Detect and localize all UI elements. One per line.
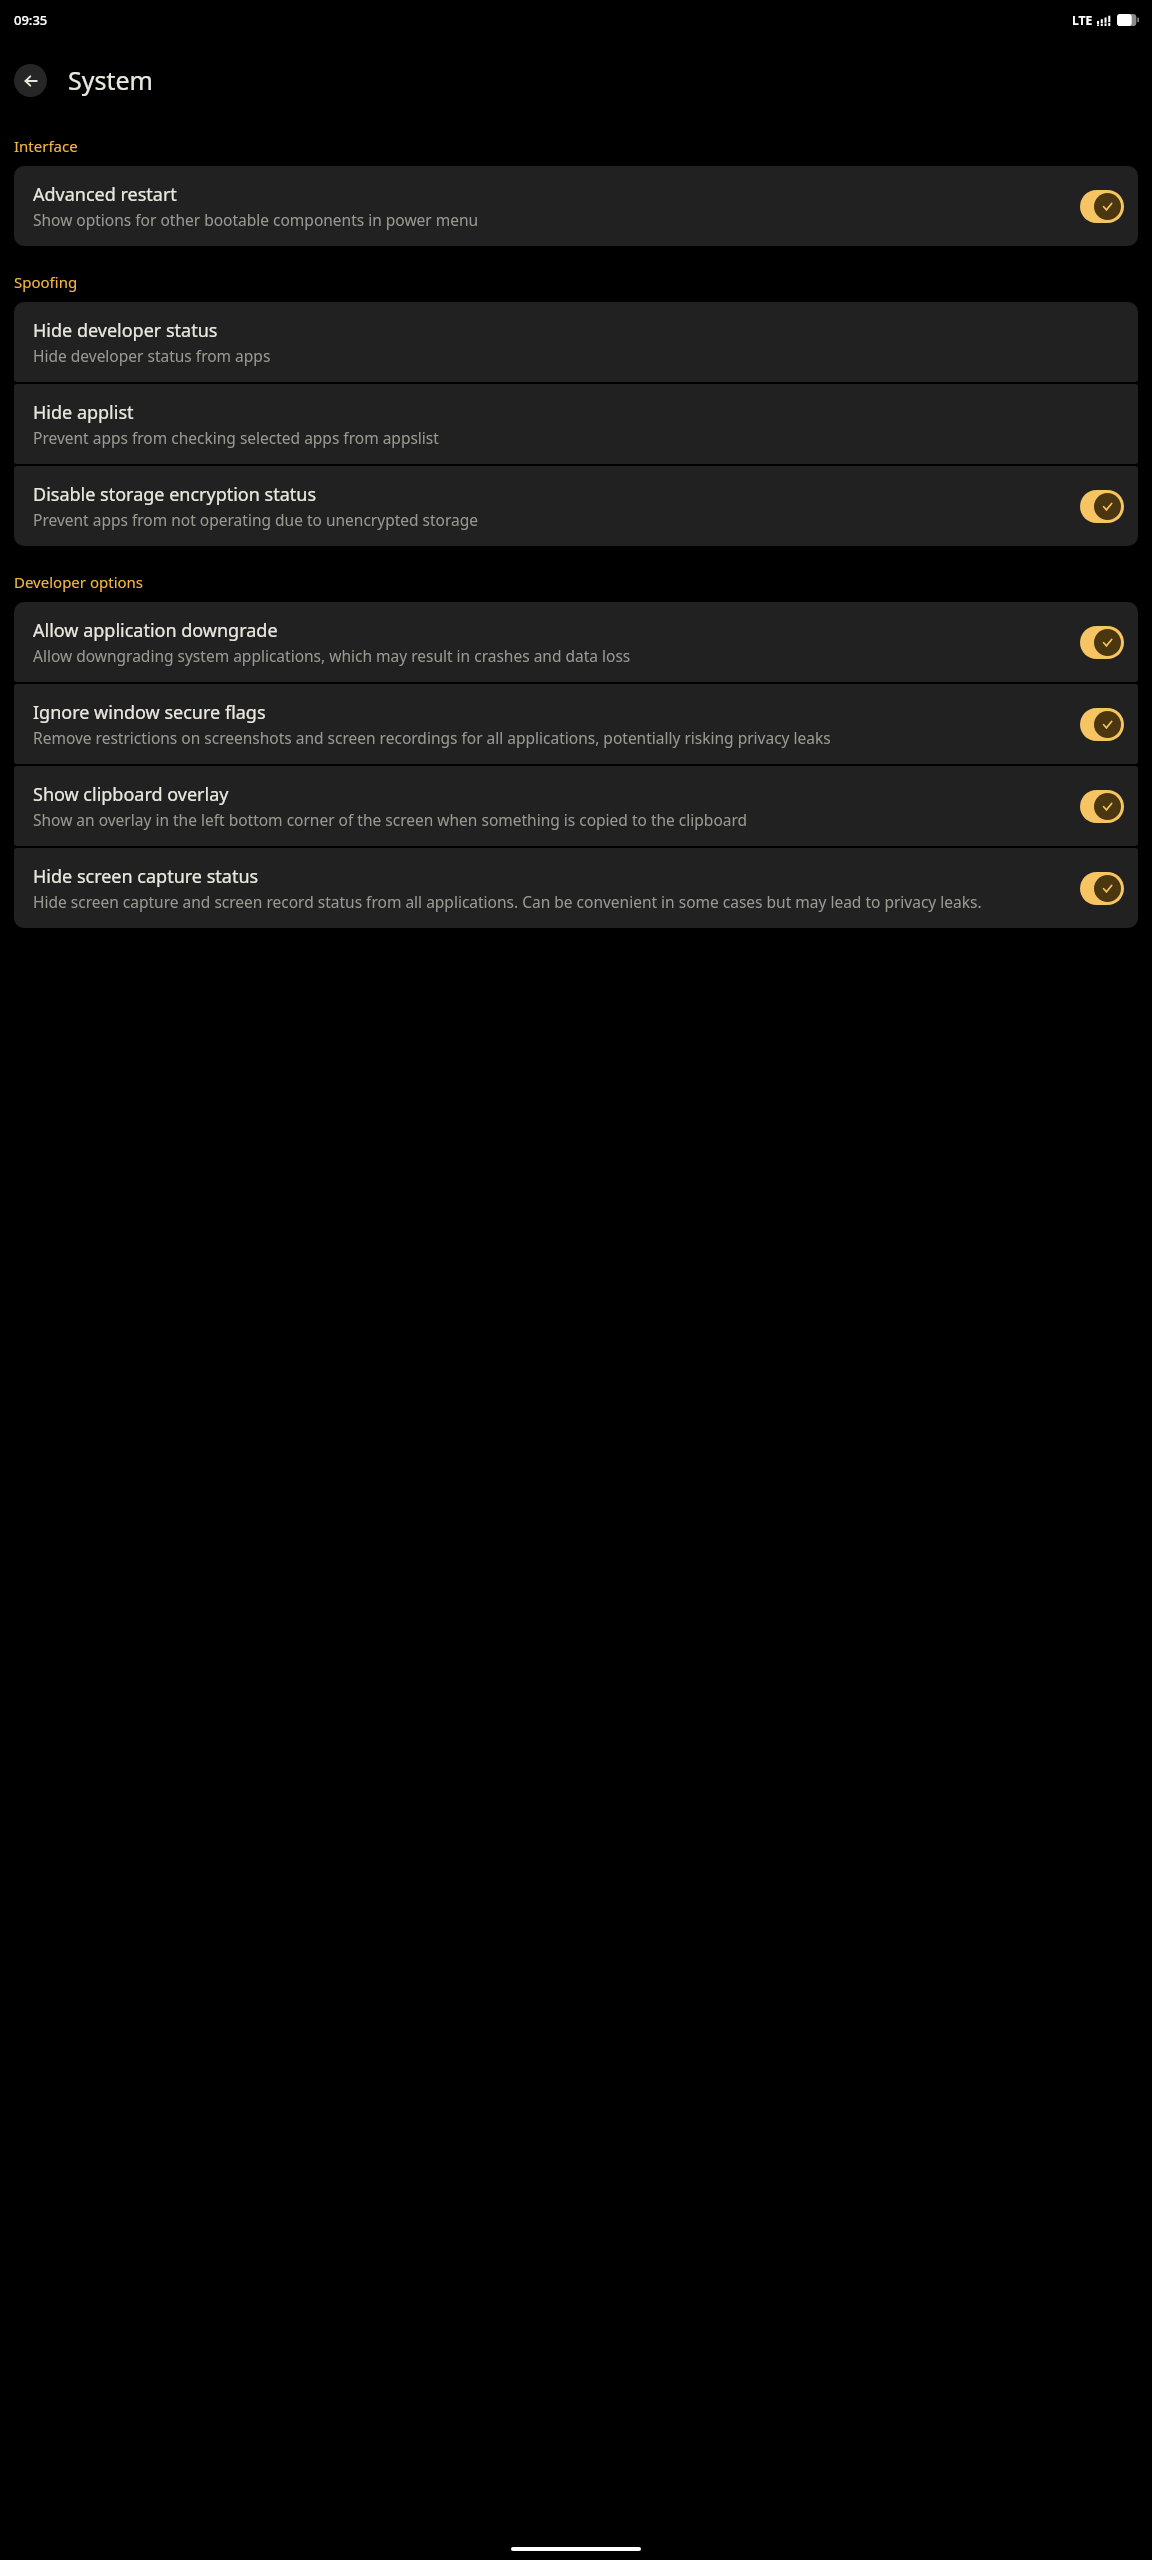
staticText: Show options for other bootable componen…	[33, 209, 479, 230]
staticText: LTE	[1072, 12, 1093, 28]
staticText: Prevent apps from not operating due to u…	[33, 509, 479, 530]
staticText: Advanced restart	[33, 182, 177, 207]
button[interactable]: Advanced restart	[14, 166, 1138, 246]
button[interactable]: Toggle on	[1080, 708, 1124, 741]
staticText: 09:35	[14, 11, 48, 29]
staticText: Prevent apps from checking selected apps…	[33, 427, 439, 448]
staticText: Interface	[14, 136, 78, 156]
staticText: Allow downgrading system applications, w…	[33, 645, 631, 666]
button[interactable]: Hide applist	[14, 384, 1138, 464]
button[interactable]: Allow application downgrade	[14, 602, 1138, 682]
staticText: Developer options	[14, 572, 144, 592]
button[interactable]: Hide screen capture status	[14, 848, 1138, 928]
staticText: Hide applist	[33, 400, 134, 425]
button[interactable]: Toggle on	[1080, 190, 1124, 223]
button[interactable]: Toggle on	[1080, 872, 1124, 905]
staticText: System	[68, 63, 153, 97]
staticText: Disable storage encryption status	[33, 482, 317, 507]
button[interactable]: Ignore window secure flags	[14, 684, 1138, 764]
staticText: Hide developer status from apps	[33, 345, 271, 366]
staticText: Show an overlay in the left bottom corne…	[33, 809, 748, 830]
button[interactable]: Show clipboard overlay	[14, 766, 1138, 846]
staticText: Allow application downgrade	[33, 618, 278, 643]
staticText: Ignore window secure flags	[33, 700, 266, 725]
staticText: Hide developer status	[33, 318, 218, 343]
button[interactable]: Back	[14, 64, 47, 97]
staticText: Remove restrictions on screenshots and s…	[33, 727, 831, 748]
button[interactable]: Toggle on	[1080, 790, 1124, 823]
staticText: Spoofing	[14, 272, 78, 292]
staticText: Hide screen capture status	[33, 864, 259, 889]
button[interactable]: Disable storage encryption status	[14, 466, 1138, 546]
button[interactable]: Toggle on	[1080, 490, 1124, 523]
button[interactable]: Hide developer status	[14, 302, 1138, 382]
staticText: Show clipboard overlay	[33, 782, 229, 807]
button[interactable]: Toggle on	[1080, 626, 1124, 659]
staticText: Hide screen capture and screen record st…	[33, 891, 982, 912]
